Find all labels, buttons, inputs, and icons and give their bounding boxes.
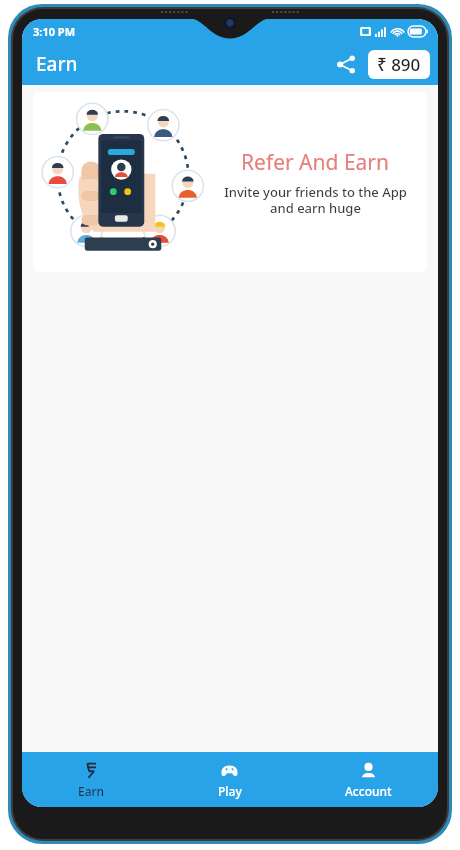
staticText: Account xyxy=(345,783,392,799)
staticText: ₹ 890 xyxy=(377,53,421,76)
staticText: Invite your friends to the App and earn … xyxy=(224,183,407,217)
button[interactable]: Earn xyxy=(22,755,160,805)
staticText: 3:10 PM xyxy=(33,24,76,39)
button[interactable]: Refer And Earn xyxy=(33,92,427,272)
staticText: Earn xyxy=(36,51,78,77)
staticText: Play xyxy=(218,783,242,799)
button[interactable]: Account xyxy=(299,755,438,805)
button[interactable]: Share xyxy=(328,46,364,82)
staticText: Refer And Earn xyxy=(241,148,389,177)
staticText: Earn xyxy=(78,783,105,799)
button[interactable]: ₹ 890 xyxy=(368,50,430,79)
button[interactable]: Play xyxy=(160,755,299,805)
